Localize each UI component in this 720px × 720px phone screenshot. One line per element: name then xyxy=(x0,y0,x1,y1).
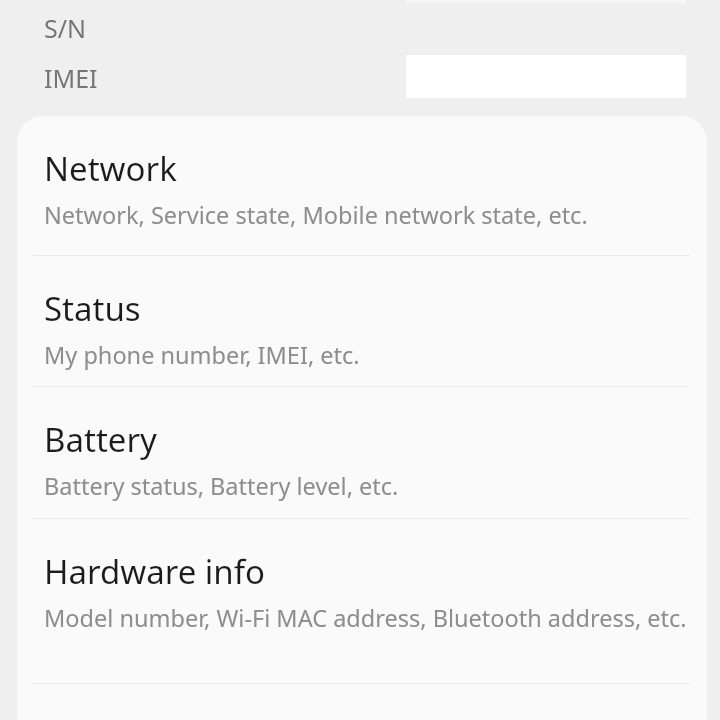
staticText: IMEI xyxy=(44,61,98,95)
staticText: S/N xyxy=(44,11,87,45)
staticText: Hardware info xyxy=(44,549,266,594)
button[interactable]: Status xyxy=(17,256,707,386)
button[interactable]: Network xyxy=(17,116,707,255)
button[interactable]: Hardware info xyxy=(17,519,707,683)
staticText: Status xyxy=(44,286,141,331)
button[interactable]: Battery xyxy=(17,387,707,518)
staticText: Network xyxy=(44,146,177,191)
staticText: Model number, Wi-Fi MAC address, Bluetoo… xyxy=(44,602,687,634)
staticText: Network, Service state, Mobile network s… xyxy=(44,199,588,231)
staticText: Battery xyxy=(44,417,157,462)
staticText: Battery status, Battery level, etc. xyxy=(44,470,399,502)
staticText: My phone number, IMEI, etc. xyxy=(44,339,360,371)
